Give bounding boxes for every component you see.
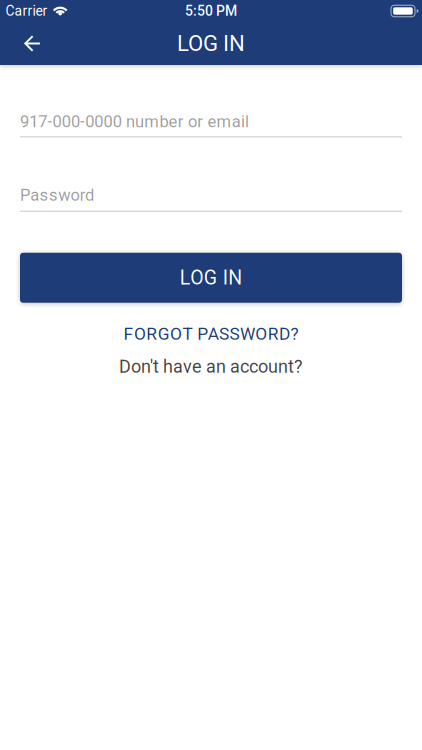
staticText: FORGOT PASSWORD? — [123, 324, 298, 344]
staticText: Carrier — [5, 3, 47, 19]
staticText: LOG IN — [180, 266, 242, 289]
staticText: Don't have an account? — [119, 356, 303, 377]
staticText: Password — [20, 185, 94, 205]
staticText: 917-000-0000 number or email — [20, 112, 249, 131]
staticText: 5:50 PM — [185, 3, 237, 19]
staticText: LOG IN — [177, 30, 245, 56]
